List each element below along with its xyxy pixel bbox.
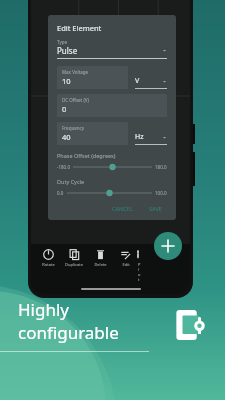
staticText: 10 — [62, 76, 71, 86]
staticText: 40 — [62, 132, 71, 142]
staticText: Max Voltage — [62, 69, 89, 75]
staticText: Type — [57, 39, 68, 45]
button[interactable]: Type — [57, 39, 167, 59]
staticText: -180.0 — [57, 164, 70, 170]
button[interactable]: Max Voltage — [57, 66, 128, 89]
button[interactable]: Rotate — [35, 248, 61, 268]
staticText: CANCEL — [112, 205, 133, 212]
button[interactable]: Duplicate — [61, 248, 87, 268]
staticText: Duty Cycle — [57, 178, 85, 185]
button[interactable]: Frequency — [57, 122, 128, 145]
staticText: Rotate — [42, 262, 55, 267]
staticText: Delete — [94, 262, 107, 267]
staticText: 0 — [62, 104, 67, 114]
staticText: Highly configurable — [18, 298, 169, 344]
button[interactable]: Edit — [113, 248, 138, 268]
staticText: Duplicate — [65, 262, 83, 267]
staticText: Hz — [135, 132, 162, 142]
staticText: SAVE — [149, 205, 162, 212]
button[interactable]: Hz — [135, 132, 167, 145]
button[interactable]: DC Offset (V) — [57, 94, 167, 117]
staticText: Edit Element — [57, 23, 102, 33]
staticText: Edit — [122, 262, 130, 267]
button[interactable]: 0.0 — [57, 189, 167, 197]
button[interactable]: SAVE — [144, 203, 167, 214]
staticText: V — [135, 76, 162, 86]
staticText: Frequency — [62, 125, 84, 131]
button[interactable]: Add element — [154, 232, 182, 260]
staticText: 100.0 — [155, 190, 167, 196]
button[interactable]: V — [135, 76, 167, 89]
staticText: Phase Offset (degrees) — [57, 152, 116, 159]
staticText: DC Offset (V) — [62, 97, 89, 103]
button[interactable]: Delete — [87, 248, 113, 268]
staticText: 0.0 — [57, 190, 64, 196]
staticText: 180.0 — [155, 164, 167, 170]
staticText: Pulse — [57, 45, 162, 56]
button[interactable]: CANCEL — [107, 203, 138, 214]
button[interactable]: -180.0 — [57, 163, 167, 171]
